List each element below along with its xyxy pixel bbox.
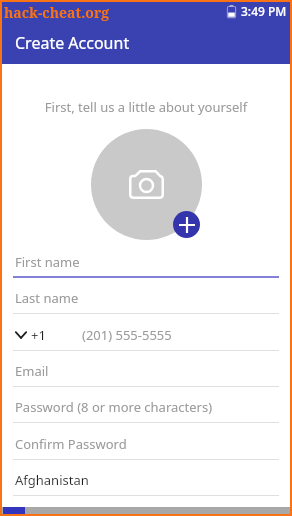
staticText: hack-cheat.org <box>4 3 110 22</box>
button[interactable]: Email <box>0 351 292 387</box>
staticText: Confirm Password <box>15 435 127 453</box>
button[interactable]: Password (8 or more characters) <box>0 387 292 423</box>
staticText: First, tell us a little about yourself <box>0 98 292 116</box>
staticText: Afghanistan <box>15 471 89 489</box>
staticText: Last name <box>15 289 79 307</box>
button[interactable]: Afghanistan <box>0 460 292 496</box>
staticText: Create Account <box>15 32 130 54</box>
button[interactable]: Add photo <box>173 211 200 238</box>
staticText: (201) 555-5555 <box>82 326 172 344</box>
button[interactable]: Confirm Password <box>0 424 292 460</box>
button[interactable]: +1 <box>0 315 292 351</box>
staticText: 3:49 PM <box>241 3 287 19</box>
staticText: Password (8 or more characters) <box>15 398 213 416</box>
staticText: First name <box>15 253 80 271</box>
staticText: +1 <box>31 326 46 344</box>
button[interactable]: Last name <box>0 278 292 314</box>
button[interactable]: First name <box>0 242 292 278</box>
staticText: Email <box>15 362 49 380</box>
button[interactable]: Add profile photo <box>91 129 202 240</box>
